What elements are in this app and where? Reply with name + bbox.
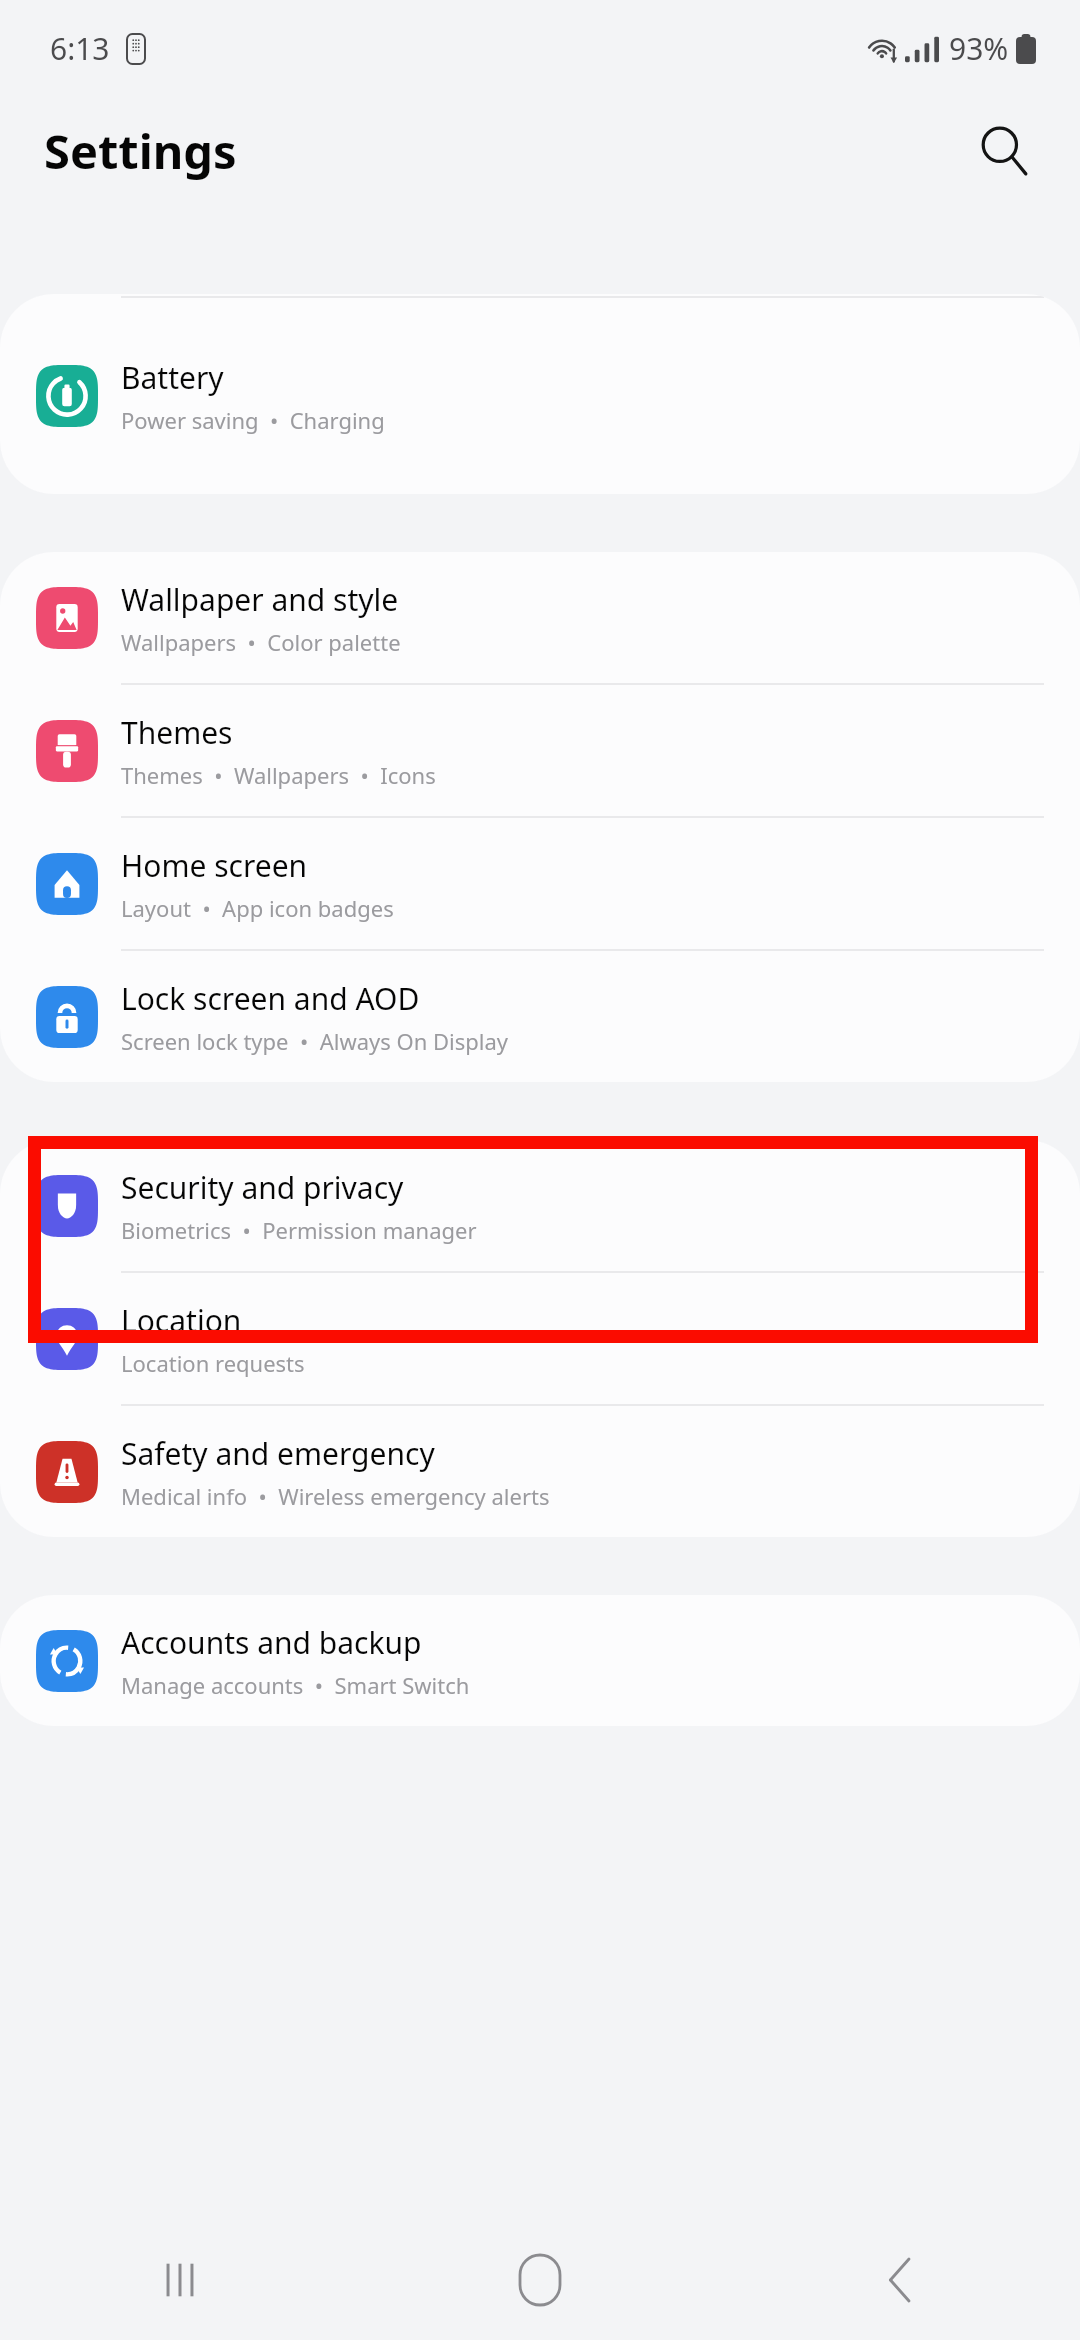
button[interactable]: Back <box>720 2220 1080 2340</box>
staticText: Wallpaper and style <box>121 579 399 620</box>
staticText: Location <box>121 1300 242 1341</box>
staticText: Home screen <box>121 845 308 886</box>
staticText: Safety and emergency <box>121 1433 435 1474</box>
button[interactable]: Security and privacy <box>0 1140 1080 1271</box>
staticText: Security and privacy <box>121 1167 404 1208</box>
button[interactable]: Battery <box>0 298 1080 494</box>
button[interactable]: Safety and emergency <box>0 1406 1080 1537</box>
staticText: 93% <box>949 28 1009 69</box>
button[interactable]: Themes <box>0 685 1080 816</box>
staticText: 6:13 <box>50 28 110 69</box>
staticText: Layout • App icon badges <box>121 893 394 923</box>
button[interactable]: Accounts and backup <box>0 1595 1080 1726</box>
staticText: Accounts and backup <box>121 1622 422 1663</box>
staticText: Battery <box>121 357 224 398</box>
staticText: Lock screen and AOD <box>121 978 420 1019</box>
button[interactable]: Search <box>964 111 1044 191</box>
staticText: Power saving • Charging <box>121 405 385 435</box>
staticText: Manage accounts • Smart Switch <box>121 1670 470 1700</box>
staticText: Wallpapers • Color palette <box>121 627 401 657</box>
button[interactable]: Location <box>0 1273 1080 1404</box>
staticText: Themes <box>121 712 233 753</box>
staticText: Medical info • Wireless emergency alerts <box>121 1481 550 1511</box>
staticText: Screen lock type • Always On Display <box>121 1026 509 1056</box>
button[interactable]: Lock screen and AOD <box>0 951 1080 1082</box>
staticText: Biometrics • Permission manager <box>121 1215 477 1245</box>
button[interactable]: Home <box>360 2220 720 2340</box>
staticText: Settings <box>44 119 237 183</box>
staticText: Location requests <box>121 1348 305 1378</box>
staticText: Themes • Wallpapers • Icons <box>121 760 436 790</box>
button[interactable]: Home screen <box>0 818 1080 949</box>
button[interactable]: Wallpaper and style <box>0 552 1080 683</box>
button[interactable]: Recent apps <box>0 2220 360 2340</box>
